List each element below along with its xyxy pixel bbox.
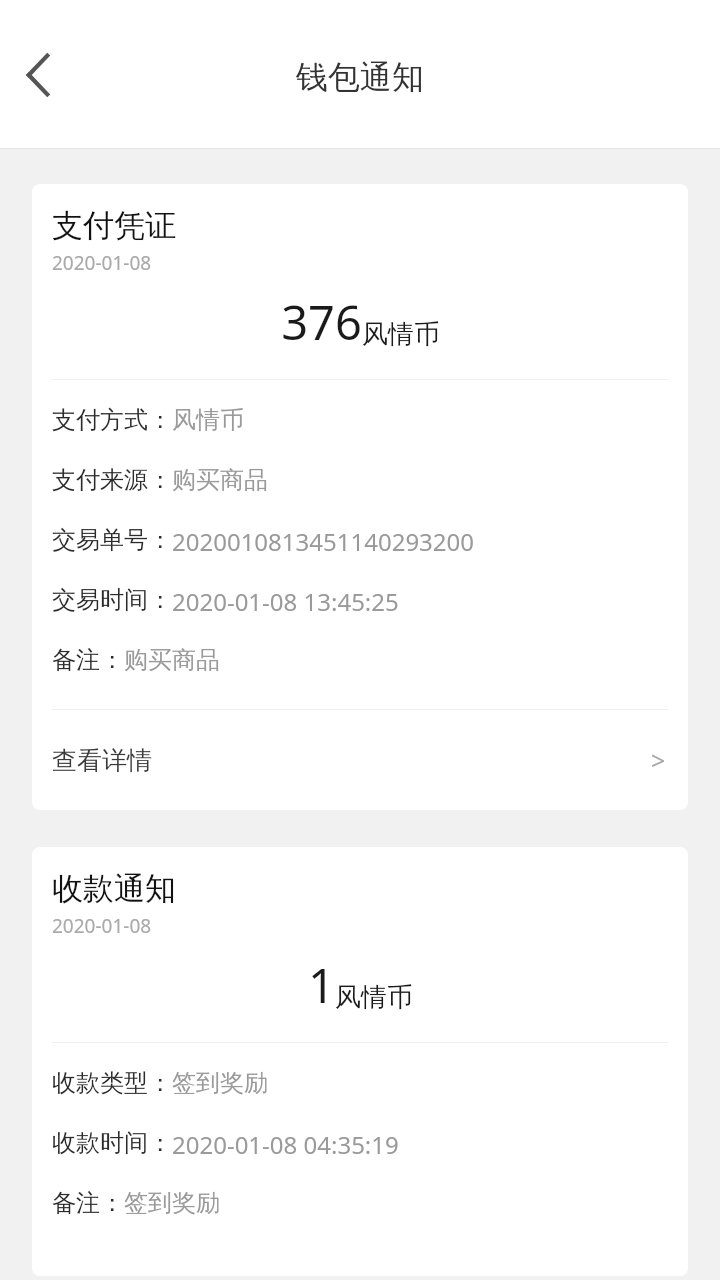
- staticText: 2020-01-08: [52, 913, 152, 939]
- staticText: 1: [308, 953, 335, 1017]
- staticText: 交易时间：: [52, 585, 172, 615]
- staticText: 支付来源：: [52, 465, 172, 495]
- staticText: 收款类型：: [52, 1068, 172, 1098]
- staticText: 钱包通知: [296, 57, 424, 97]
- staticText: 签到奖励: [124, 1188, 220, 1218]
- button[interactable]: Back: [4, 37, 80, 113]
- button[interactable]: 支付凭证: [32, 184, 688, 810]
- staticText: 风情币: [362, 318, 440, 351]
- staticText: 收款通知: [52, 869, 176, 908]
- staticText: 风情币: [335, 981, 413, 1014]
- staticText: >: [651, 743, 666, 777]
- button[interactable]: 查看详情: [32, 710, 688, 810]
- button[interactable]: 收款通知: [32, 847, 688, 1276]
- staticText: 购买商品: [124, 645, 220, 675]
- staticText: 收款时间：: [52, 1128, 172, 1158]
- staticText: 风情币: [172, 405, 244, 435]
- staticText: 签到奖励: [172, 1068, 268, 1098]
- staticText: 备注：: [52, 1188, 124, 1218]
- staticText: 交易单号：: [52, 525, 172, 555]
- staticText: 购买商品: [172, 465, 268, 495]
- staticText: 2020-01-08 13:45:25: [172, 585, 399, 618]
- staticText: 2020010813451140293200: [172, 525, 475, 558]
- staticText: 支付凭证: [52, 206, 176, 245]
- staticText: 查看详情: [52, 745, 152, 776]
- staticText: 2020-01-08: [52, 250, 152, 276]
- staticText: 支付方式：: [52, 405, 172, 435]
- staticText: 376: [281, 290, 362, 354]
- staticText: 2020-01-08 04:35:19: [172, 1128, 399, 1161]
- staticText: 备注：: [52, 645, 124, 675]
